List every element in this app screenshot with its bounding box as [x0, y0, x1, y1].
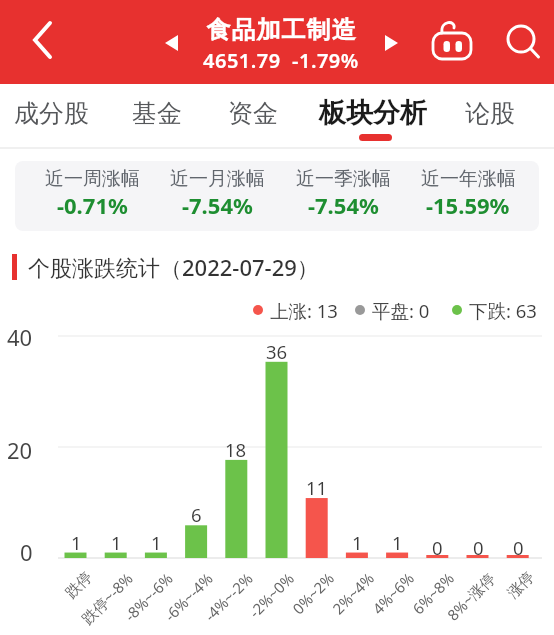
- staticText: -6%~-4%: [160, 568, 217, 625]
- staticText: 论股: [465, 98, 515, 129]
- staticText: -7.54%: [308, 190, 379, 220]
- button[interactable]: [496, 12, 548, 68]
- staticText: 跌停~-8%: [77, 568, 137, 628]
- staticText: -8%~-6%: [120, 568, 177, 625]
- staticText: 4%~6%: [368, 568, 418, 618]
- staticText: 成分股: [14, 98, 89, 129]
- staticText: -7.54%: [182, 190, 253, 220]
- staticText: 近一周涨幅: [45, 167, 140, 191]
- button[interactable]: 成分股: [0, 84, 111, 142]
- staticText: 2%~4%: [328, 568, 378, 618]
- staticText: 0: [513, 535, 524, 560]
- button[interactable]: [14, 10, 72, 70]
- staticText: 40: [7, 322, 33, 352]
- staticText: 食品加工制造: [206, 15, 356, 45]
- staticText: 板块分析: [319, 96, 427, 130]
- staticText: 36: [266, 339, 288, 364]
- staticText: 0: [432, 535, 443, 560]
- staticText: 20: [7, 435, 33, 465]
- staticText: 0: [20, 537, 33, 567]
- staticText: 0%~2%: [288, 568, 338, 618]
- staticText: -0.71%: [57, 190, 128, 220]
- staticText: 6%~8%: [408, 568, 458, 618]
- staticText: 资金: [228, 98, 278, 129]
- staticText: 8%~涨停: [443, 568, 499, 625]
- staticText: 涨停: [504, 568, 538, 603]
- staticText: 近一季涨幅: [296, 167, 391, 191]
- staticText: 跌停: [62, 568, 96, 603]
- button[interactable]: 基金: [117, 84, 197, 142]
- staticText: 基金: [132, 98, 182, 129]
- staticText: 4651.79 -1.79%: [203, 47, 359, 74]
- staticText: 近一年涨幅: [421, 167, 516, 191]
- staticText: 个股涨跌统计（2022-07-29）: [28, 252, 319, 282]
- staticText: 1: [352, 530, 363, 555]
- staticText: 1: [392, 530, 403, 555]
- staticText: 平盘: 0: [372, 298, 430, 323]
- button[interactable]: 板块分析: [313, 84, 433, 142]
- button[interactable]: 论股: [450, 84, 530, 142]
- staticText: 1: [111, 530, 122, 555]
- staticText: 1: [151, 530, 162, 555]
- staticText: 近一月涨幅: [170, 167, 265, 191]
- staticText: -2%~0%: [244, 568, 298, 622]
- button[interactable]: [425, 12, 481, 68]
- staticText: -15.59%: [426, 190, 510, 220]
- staticText: 0: [473, 535, 484, 560]
- staticText: 6: [191, 502, 202, 527]
- staticText: 1: [71, 530, 82, 555]
- staticText: 上涨: 13: [270, 298, 338, 323]
- staticText: 18: [225, 437, 247, 462]
- staticText: -4%~-2%: [200, 568, 257, 625]
- staticText: 11: [306, 475, 328, 500]
- button[interactable]: 资金: [213, 84, 293, 142]
- staticText: 下跌: 63: [469, 298, 537, 323]
